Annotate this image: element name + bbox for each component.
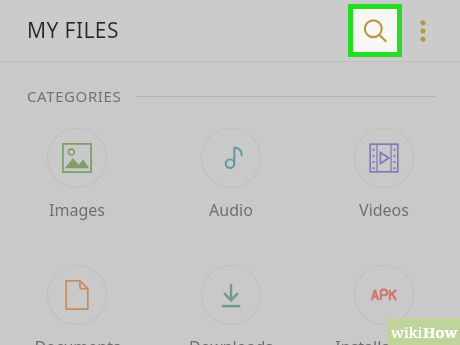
staticText: How bbox=[423, 322, 458, 342]
staticText: wiki bbox=[391, 322, 423, 342]
button[interactable]: Search bbox=[353, 9, 397, 52]
staticText: Documents bbox=[34, 336, 121, 345]
button[interactable]: Downloads bbox=[154, 263, 307, 345]
staticText: Audio bbox=[209, 199, 253, 221]
button[interactable]: More options bbox=[410, 7, 436, 55]
staticText: Downloads bbox=[189, 336, 273, 345]
button[interactable]: Videos bbox=[307, 126, 460, 223]
button[interactable]: Audio bbox=[154, 126, 307, 223]
staticText: MY FILES bbox=[27, 16, 119, 45]
staticText: Images bbox=[49, 199, 105, 221]
button[interactable]: Documents bbox=[0, 263, 154, 345]
button[interactable]: Images bbox=[0, 126, 154, 223]
button[interactable]: Installation... bbox=[307, 263, 460, 345]
staticText: Videos bbox=[359, 199, 409, 221]
staticText: CATEGORIES bbox=[27, 86, 122, 106]
staticText: Installation... bbox=[335, 336, 433, 345]
